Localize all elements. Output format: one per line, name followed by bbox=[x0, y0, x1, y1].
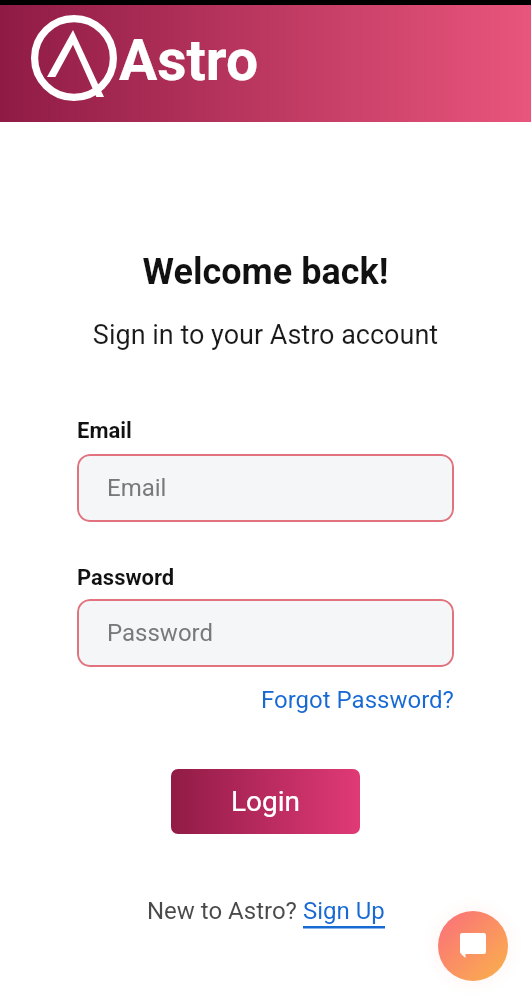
staticText: Email bbox=[107, 474, 167, 502]
staticText: Password bbox=[77, 565, 175, 591]
staticText: Email bbox=[77, 418, 132, 444]
button[interactable]: Sign Up bbox=[303, 897, 385, 925]
staticText: Login bbox=[231, 785, 301, 818]
button[interactable]: Forgot Password? bbox=[261, 686, 454, 714]
button[interactable]: Login bbox=[171, 769, 360, 834]
staticText: Astro bbox=[119, 27, 259, 94]
staticText: Welcome back! bbox=[0, 251, 531, 293]
button[interactable]: Password bbox=[77, 599, 454, 667]
staticText: Password bbox=[107, 619, 214, 647]
staticText: New to Astro? bbox=[147, 897, 303, 925]
button[interactable]: Email bbox=[77, 454, 454, 522]
staticText: Sign Up bbox=[303, 897, 385, 925]
staticText: Sign in to your Astro account bbox=[0, 319, 531, 351]
button[interactable]: Chat bbox=[438, 911, 508, 981]
